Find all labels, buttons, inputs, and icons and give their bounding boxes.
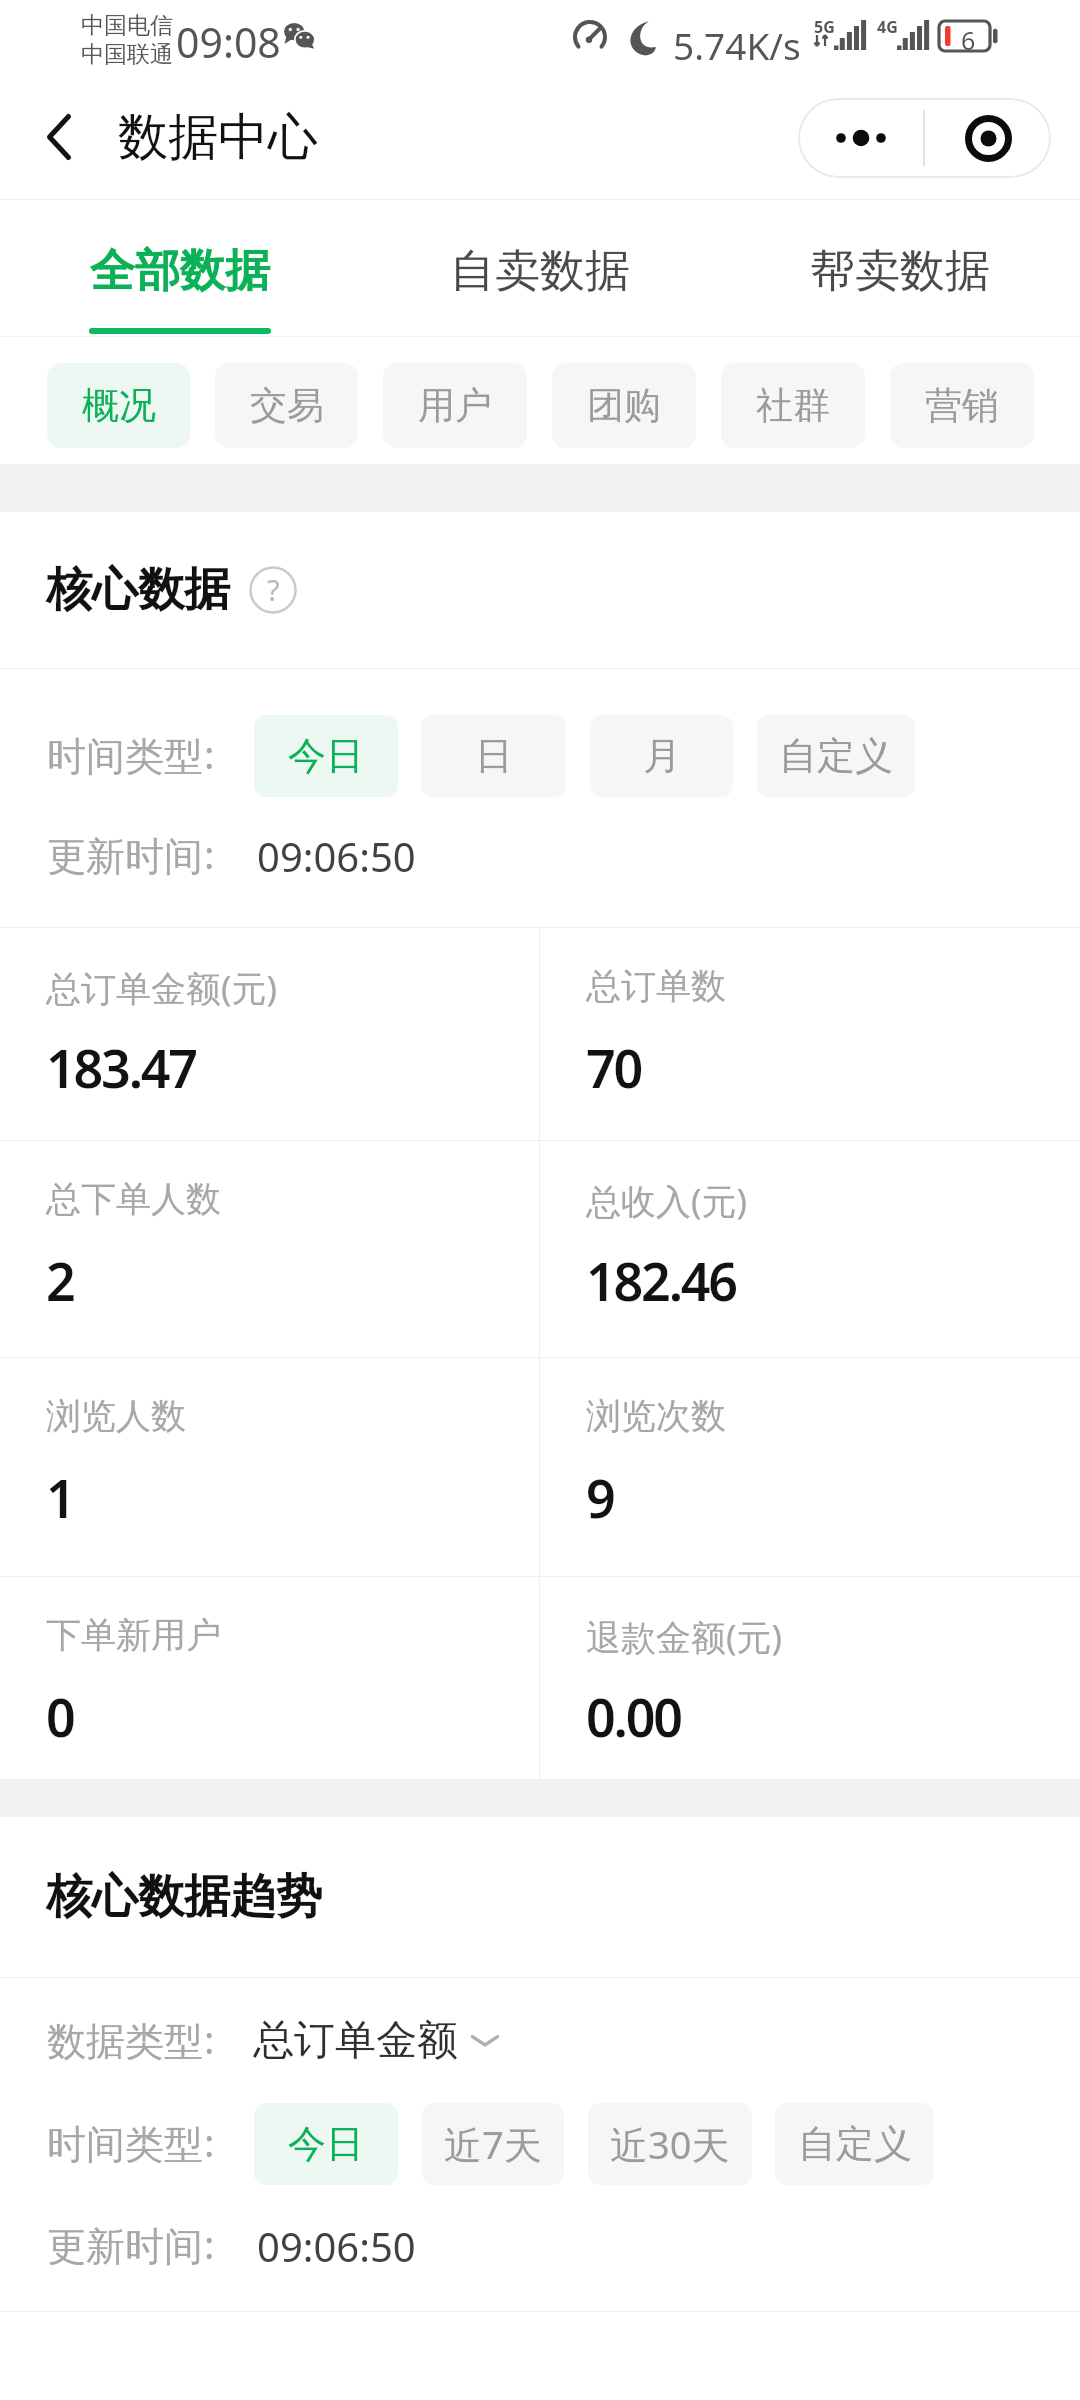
staticText: 今日 — [288, 2120, 364, 2168]
staticText: 时间类型 — [47, 2120, 203, 2169]
staticText: 总订单金额(元) — [46, 964, 278, 1012]
button[interactable]: 日 — [421, 715, 566, 797]
staticText: : — [204, 2012, 215, 2065]
button[interactable]: 总订单金额(元) — [0, 928, 539, 1140]
staticText: 浏览人数 — [46, 1394, 186, 1438]
button[interactable]: 退款金额(元) — [540, 1577, 1080, 1779]
button[interactable]: 总收入(元) — [540, 1141, 1080, 1357]
staticText: 核心数据 — [46, 561, 230, 619]
staticText: 近7天 — [444, 2118, 542, 2170]
staticText: : — [204, 827, 215, 880]
staticText: 退款金额(元) — [586, 1613, 783, 1661]
button[interactable]: 总订单数 — [540, 928, 1080, 1140]
button[interactable]: 总订单金额 — [253, 2015, 500, 2067]
button[interactable]: More options — [798, 98, 923, 178]
button[interactable]: 近7天 — [422, 2103, 564, 2185]
button[interactable]: 自定义 — [775, 2103, 934, 2185]
button[interactable]: 近30天 — [588, 2103, 752, 2185]
button[interactable]: 今日 — [254, 715, 398, 797]
staticText: 核心数据趋势 — [46, 1868, 322, 1926]
staticText: 6 — [961, 23, 976, 53]
staticText: 下单新用户 — [46, 1613, 221, 1657]
staticText: 概况 — [82, 382, 156, 429]
button[interactable]: Help — [247, 564, 299, 616]
staticText: 0 — [46, 1681, 74, 1752]
staticText: 用户 — [418, 382, 492, 429]
staticText: 总下单人数 — [46, 1177, 221, 1221]
staticText: : — [204, 2217, 215, 2270]
staticText: 帮卖数据 — [810, 243, 990, 300]
staticText: 月 — [643, 732, 681, 780]
button[interactable]: 自卖数据 — [360, 200, 720, 337]
button[interactable]: 帮卖数据 — [720, 200, 1080, 337]
staticText: 4G — [877, 16, 898, 38]
button[interactable]: 交易 — [215, 363, 358, 448]
staticText: 团购 — [587, 382, 661, 429]
staticText: 0.00 — [586, 1681, 681, 1752]
button[interactable]: Close mini program — [925, 98, 1051, 178]
staticText: 2 — [46, 1245, 74, 1316]
button[interactable]: 营销 — [890, 363, 1034, 448]
button[interactable]: 下单新用户 — [0, 1577, 539, 1779]
staticText: 社群 — [756, 382, 830, 429]
staticText: 自卖数据 — [450, 243, 630, 300]
button[interactable]: 自定义 — [757, 715, 915, 797]
button[interactable]: 全部数据 — [0, 200, 360, 337]
staticText: 总订单金额 — [253, 2015, 458, 2067]
staticText: 浏览次数 — [586, 1394, 726, 1438]
button[interactable]: 今日 — [254, 2103, 398, 2185]
staticText: 近30天 — [610, 2118, 730, 2170]
staticText: 更新时间 — [47, 2222, 203, 2271]
button[interactable]: 浏览人数 — [0, 1358, 539, 1576]
staticText: 70 — [586, 1032, 642, 1103]
staticText: 全部数据 — [90, 243, 270, 300]
staticText: 1 — [46, 1462, 74, 1533]
staticText: 总收入(元) — [586, 1177, 748, 1225]
staticText: 5G — [814, 16, 835, 38]
button[interactable]: 浏览次数 — [540, 1358, 1080, 1576]
staticText: 今日 — [288, 732, 364, 780]
staticText: 交易 — [250, 382, 324, 429]
staticText: 182.46 — [586, 1245, 736, 1316]
button[interactable]: 总下单人数 — [0, 1141, 539, 1357]
staticText: 09:08 — [176, 14, 281, 70]
button[interactable]: 团购 — [552, 363, 696, 448]
staticText: 自定义 — [779, 732, 893, 780]
staticText: 自定义 — [798, 2120, 912, 2168]
staticText: 时间类型 — [47, 732, 203, 781]
staticText: 09:06:50 — [257, 2219, 416, 2273]
button[interactable]: 用户 — [383, 363, 527, 448]
staticText: : — [204, 2115, 215, 2168]
staticText: 183.47 — [46, 1032, 196, 1103]
staticText: 数据类型 — [47, 2017, 203, 2066]
staticText: 营销 — [925, 382, 999, 429]
button[interactable]: 社群 — [721, 363, 865, 448]
staticText: 5.74K/s — [673, 20, 801, 70]
staticText: : — [204, 727, 215, 780]
staticText: ? — [267, 570, 280, 609]
button[interactable]: 概况 — [47, 363, 190, 448]
staticText: 09:06:50 — [257, 829, 416, 883]
staticText: 9 — [586, 1462, 614, 1533]
staticText: 总订单数 — [586, 964, 726, 1008]
staticText: 数据中心 — [118, 106, 318, 169]
staticText: 中国联通 — [81, 40, 173, 69]
button[interactable]: 月 — [590, 715, 733, 797]
staticText: 更新时间 — [47, 832, 203, 881]
staticText: 日 — [475, 732, 513, 780]
staticText: 中国电信 — [81, 11, 173, 40]
button[interactable]: Back — [0, 83, 118, 191]
